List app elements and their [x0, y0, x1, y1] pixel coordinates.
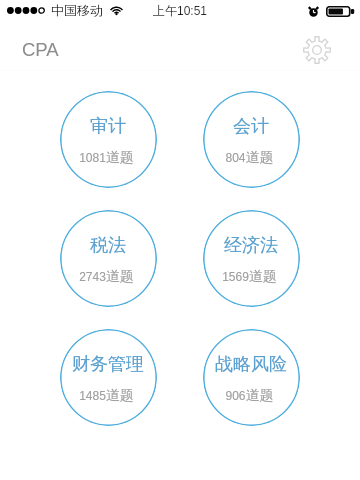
- button[interactable]: 经济法: [203, 210, 300, 307]
- button[interactable]: Settings: [300, 33, 334, 67]
- button[interactable]: 审计: [60, 91, 157, 188]
- staticText: 2743道题: [79, 268, 134, 286]
- staticText: 税法: [90, 234, 126, 257]
- button[interactable]: 税法: [60, 210, 157, 307]
- staticText: 1081道题: [79, 149, 134, 167]
- staticText: 804道题: [225, 149, 274, 167]
- button[interactable]: 会计: [203, 91, 300, 188]
- staticText: 906道题: [225, 387, 274, 405]
- staticText: 上午10:51: [153, 3, 208, 18]
- staticText: 财务管理: [72, 353, 144, 376]
- staticText: 战略风险: [215, 353, 287, 376]
- staticText: 会计: [233, 115, 269, 138]
- staticText: 审计: [90, 115, 126, 138]
- button[interactable]: 战略风险: [203, 329, 300, 426]
- staticText: 1569道题: [222, 268, 277, 286]
- staticText: CPA: [22, 39, 59, 60]
- button[interactable]: 财务管理: [60, 329, 157, 426]
- staticText: 经济法: [224, 234, 278, 257]
- staticText: 中国移动: [51, 2, 103, 18]
- staticText: 1485道题: [79, 387, 134, 405]
